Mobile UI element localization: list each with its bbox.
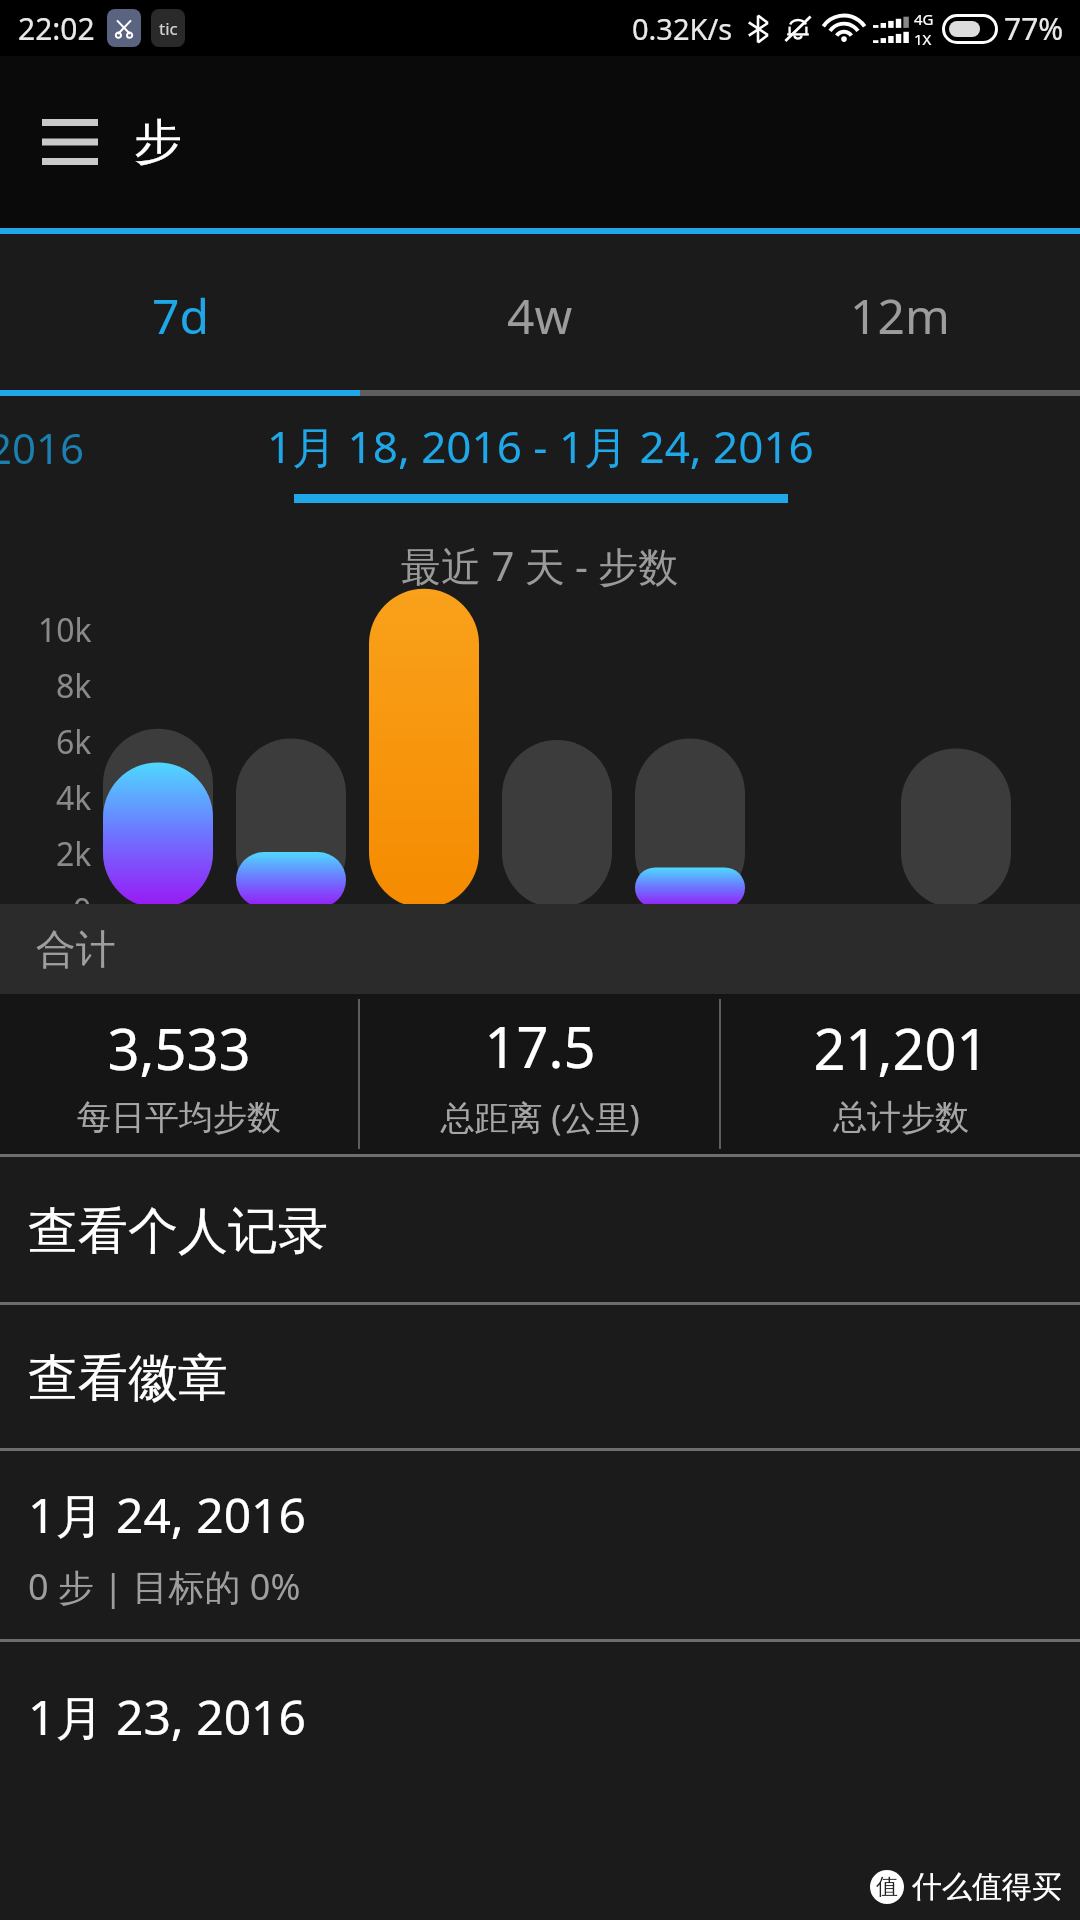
staticText: 7d: [152, 283, 209, 348]
staticText: 77%: [1004, 8, 1064, 49]
button[interactable]: 1月 24, 2016: [0, 1451, 1080, 1642]
staticText: 查看个人记录: [28, 1200, 328, 1263]
staticText: 0 步 | 目标的 0%: [28, 1562, 301, 1611]
button[interactable]: 17.5: [360, 994, 719, 1154]
staticText: 合计: [36, 924, 116, 974]
staticText: 8k: [56, 664, 92, 708]
staticText: 1月 24, 2016: [28, 1482, 307, 1548]
staticText: 1X: [914, 29, 932, 49]
staticText: 4w: [507, 283, 573, 348]
staticText: 2016: [0, 419, 85, 476]
button[interactable]: 查看个人记录: [0, 1157, 1080, 1305]
staticText: 总计步数: [833, 1096, 969, 1139]
button[interactable]: 21,201: [721, 994, 1080, 1154]
staticText: 3,533: [107, 1010, 251, 1086]
staticText: 总距离 (公里): [440, 1094, 640, 1140]
staticText: 6k: [56, 720, 92, 764]
button[interactable]: 查看徽章: [0, 1305, 1080, 1451]
button[interactable]: 7d: [0, 234, 360, 396]
staticText: 值: [876, 1873, 898, 1901]
staticText: 21,201: [813, 1010, 989, 1086]
staticText: 查看徽章: [28, 1347, 228, 1410]
button[interactable]: 12m: [720, 234, 1080, 396]
staticText: tic: [159, 17, 178, 40]
button[interactable]: 3,533: [0, 994, 358, 1154]
staticText: 12m: [850, 283, 950, 348]
button[interactable]: Menu: [24, 96, 116, 188]
staticText: 步: [134, 112, 182, 172]
staticText: 22:02: [18, 8, 95, 49]
staticText: 2k: [56, 832, 92, 876]
button[interactable]: 1月 23, 2016: [0, 1642, 1080, 1920]
staticText: 17.5: [484, 1008, 596, 1084]
staticText: 1/18: [100, 930, 167, 974]
staticText: 4G: [914, 9, 934, 29]
staticText: 1月 18, 2016 - 1月 24, 2016: [267, 416, 814, 476]
button[interactable]: 4w: [360, 234, 720, 396]
staticText: 什么值得买: [912, 1868, 1062, 1906]
button[interactable]: 1月 18, 2016 - 1月 24, 2016: [267, 416, 814, 503]
staticText: 最近 7 天 - 步数: [401, 538, 679, 593]
staticText: 每日平均步数: [77, 1096, 281, 1139]
staticText: 0: [73, 888, 92, 932]
staticText: 4k: [56, 776, 92, 820]
staticText: 1月 23, 2016: [28, 1684, 307, 1750]
staticText: 10k: [38, 608, 92, 652]
staticText: 0.32K/s: [632, 9, 733, 48]
